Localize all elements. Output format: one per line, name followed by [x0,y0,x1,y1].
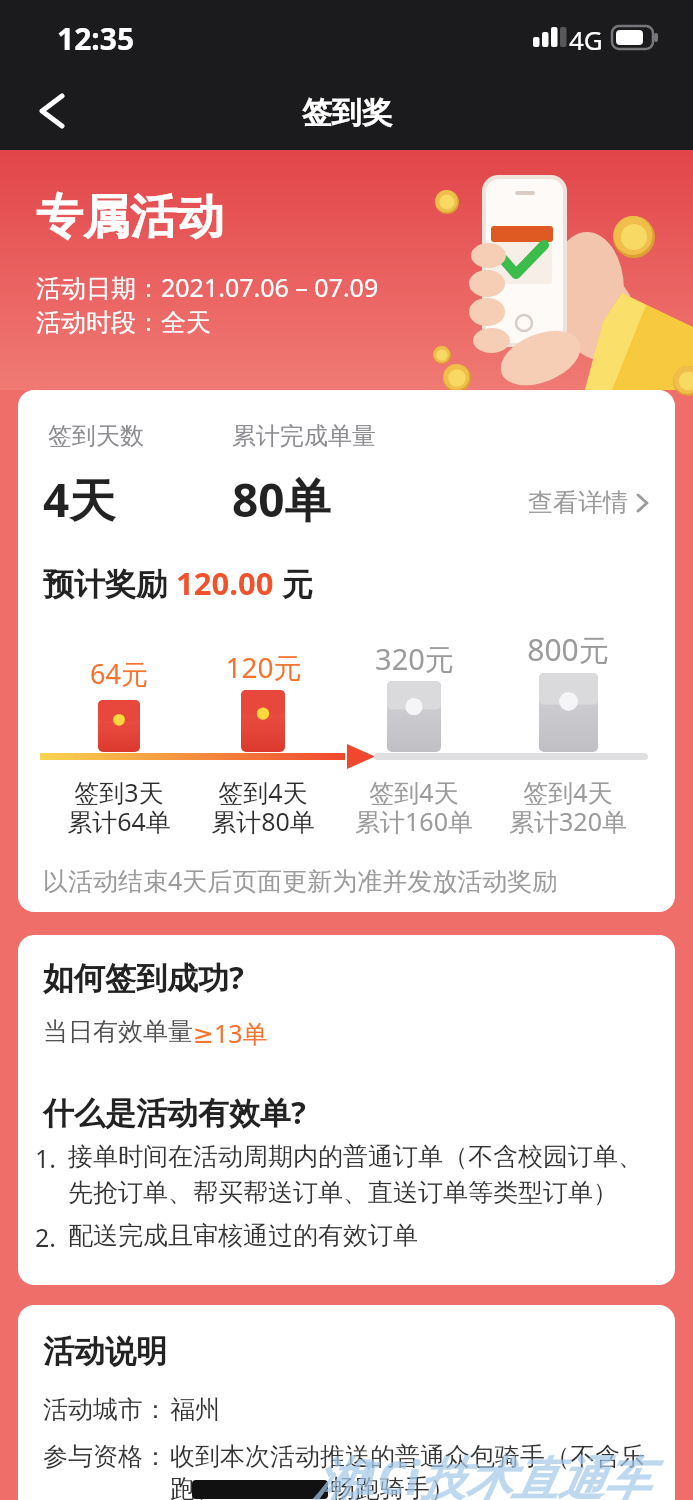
staticText: 跑、 [170,1473,220,1500]
button[interactable]: 查看详情 [528,487,650,518]
staticText: 800元 [527,629,609,670]
staticText: 畅跑骑手） [330,1473,455,1500]
staticText: 配送完成且审核通过的有效订单 [68,1220,418,1251]
staticText: 参与资格： [43,1441,168,1472]
staticText: ≥13单 [193,1016,268,1050]
staticText: 签到4天 累计80单 [211,775,315,838]
staticText: 当日有效单量 [43,1016,193,1047]
staticText: 活动日期：2021.07.06 – 07.09 [36,270,379,304]
staticText: 元 [274,562,314,604]
staticText: 签到4天 累计160单 [355,775,473,838]
staticText: 4G [569,22,603,57]
staticText: 预计奖励 [43,562,176,604]
staticText: 64元 [90,655,148,692]
staticText: 80单 [232,468,331,531]
staticText: 12:35 [57,18,135,59]
staticText: 2. [35,1220,57,1254]
staticText: 签到3天 累计64单 [67,775,171,838]
staticText: 320元 [375,639,454,679]
staticText: 120元 [225,648,302,686]
staticText: 查看详情 [528,487,628,518]
staticText: 什么是活动有效单? [43,1091,306,1133]
staticText: 活动说明 [43,1332,167,1371]
staticText: 福州 [170,1394,220,1425]
staticText: 签到奖 [302,94,392,132]
staticText: 累计完成单量 [232,421,376,451]
staticText: 湘ICi技术直通车 [314,1446,650,1500]
staticText: 以活动结束4天后页面更新为准并发放活动奖励 [43,863,558,897]
staticText: 签到天数 [48,421,144,451]
staticText: 如何签到成功? [43,956,244,998]
staticText: 120.00 [176,562,274,604]
staticText: 1. [35,1141,57,1175]
staticText: 接单时间在活动周期内的普通订单（不含校园订单、 先抢订单、帮买帮送订单、直送订单… [68,1141,643,1208]
staticText: 活动时段：全天 [36,307,211,338]
staticText: 收到本次活动推送的普通众包骑手（不含乐 [170,1441,645,1472]
staticText: 活动城市： [43,1394,168,1425]
staticText: 签到4天 累计320单 [509,775,627,838]
button[interactable] [0,75,70,145]
staticText: 4天 [43,468,116,531]
staticText: 专属活动 [36,188,224,247]
